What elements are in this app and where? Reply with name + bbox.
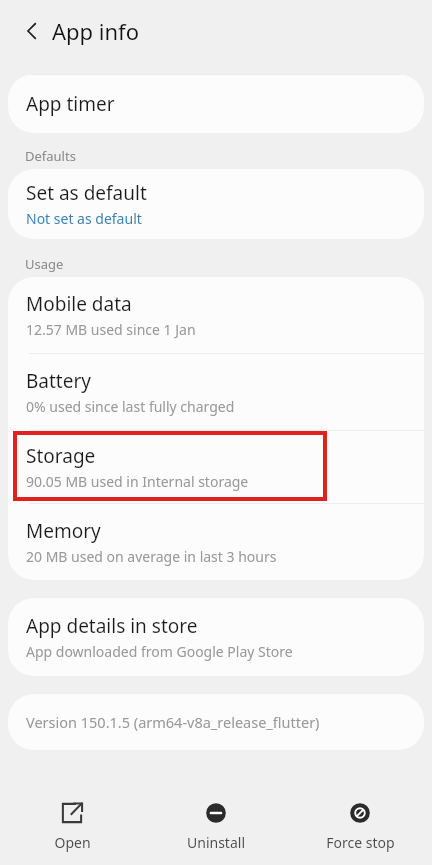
staticText: Storage	[26, 443, 96, 469]
staticText: Defaults	[25, 147, 76, 165]
staticText: Open	[54, 833, 91, 852]
button[interactable]: Memory	[8, 504, 424, 580]
button[interactable]: App details in store	[8, 598, 424, 676]
button[interactable]: Force stop	[288, 801, 432, 852]
staticText: App details in store	[26, 613, 198, 639]
staticText: Usage	[25, 255, 64, 273]
button[interactable]: Back	[14, 13, 50, 49]
button[interactable]: App timer	[8, 75, 424, 133]
button[interactable]: Mobile data	[8, 277, 424, 353]
staticText: App info	[52, 16, 139, 46]
staticText: Force stop	[326, 833, 395, 852]
button[interactable]: Open	[0, 801, 144, 852]
staticText: Battery	[26, 368, 91, 394]
staticText: Mobile data	[26, 291, 132, 317]
staticText: Set as default	[26, 180, 147, 206]
button[interactable]: Set as default	[8, 169, 424, 239]
staticText: 20 MB used on average in last 3 hours	[26, 547, 277, 566]
staticText: 0% used since last fully charged	[26, 397, 235, 416]
staticText: 12.57 MB used since 1 Jan	[26, 320, 196, 339]
staticText: App timer	[26, 91, 115, 117]
button[interactable]: Uninstall	[144, 801, 288, 852]
button[interactable]: Storage	[8, 431, 424, 503]
staticText: Memory	[26, 518, 101, 544]
staticText: App downloaded from Google Play Store	[26, 642, 293, 661]
button[interactable]: Battery	[8, 354, 424, 430]
staticText: Not set as default	[26, 209, 142, 228]
staticText: 90.05 MB used in Internal storage	[26, 472, 249, 491]
staticText: Version 150.1.5 (arm64-v8a_release_flutt…	[26, 712, 320, 732]
staticText: Uninstall	[187, 833, 245, 852]
